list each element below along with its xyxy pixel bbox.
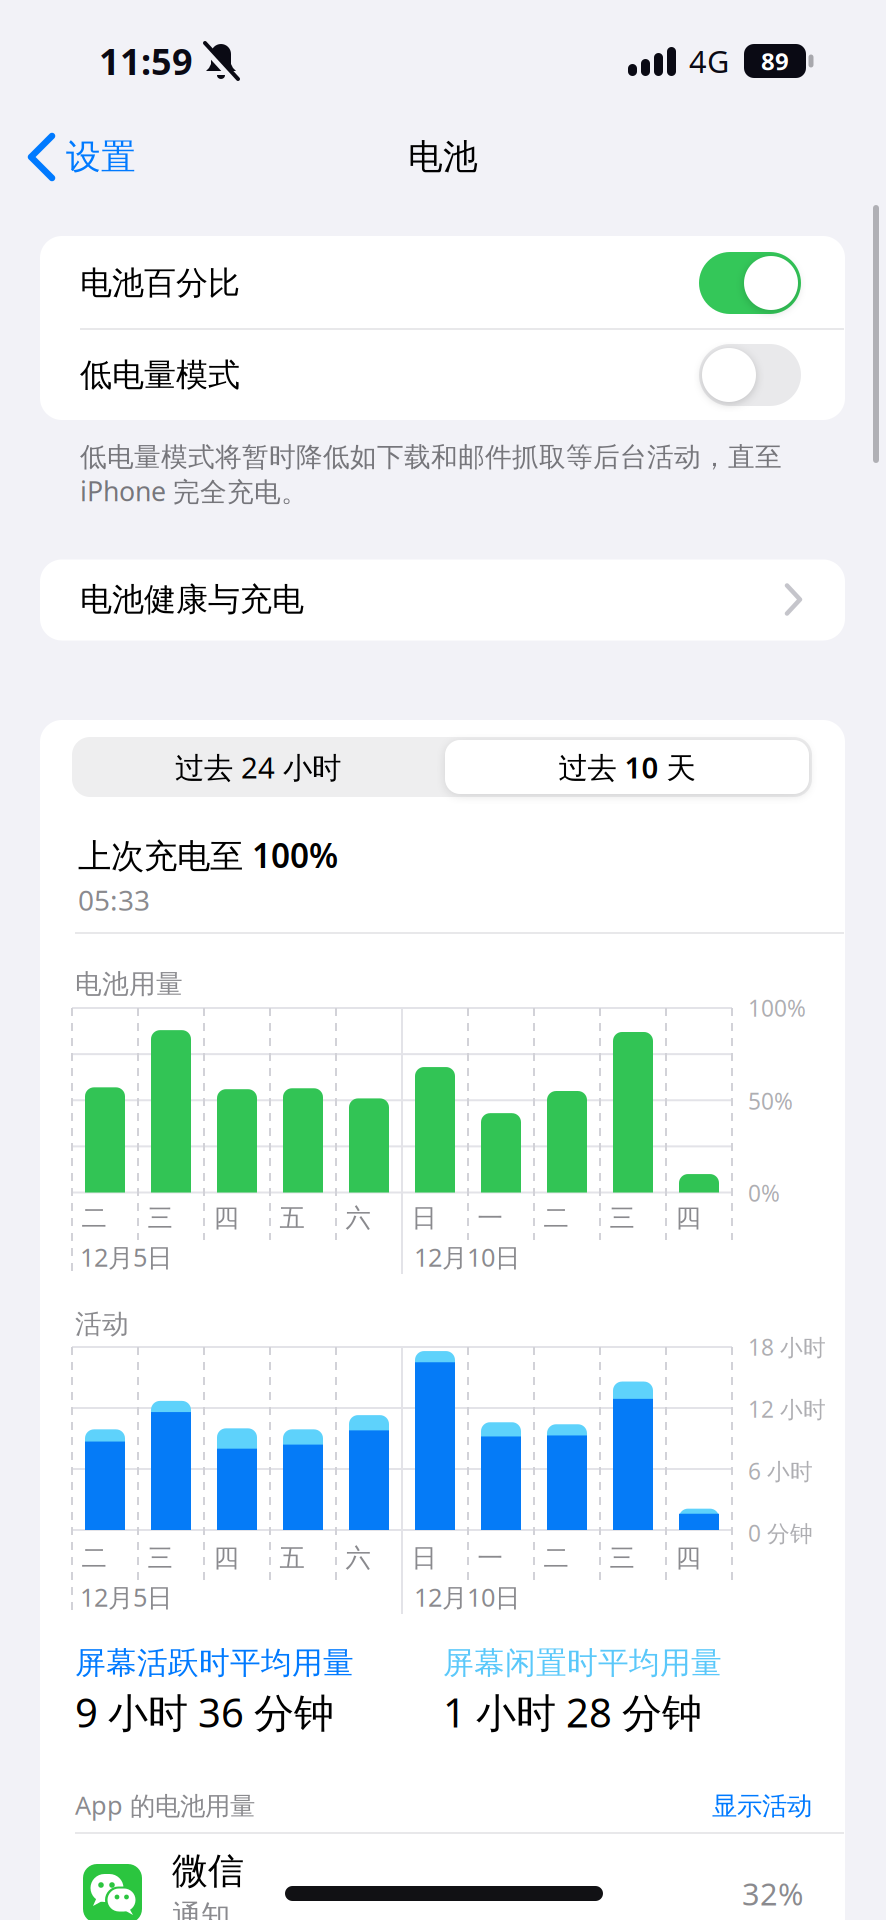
staticText: 0%	[748, 1178, 780, 1208]
staticText: 五	[279, 1202, 304, 1233]
staticText: 五	[279, 1542, 304, 1573]
staticText: 低电量模式	[80, 355, 240, 395]
staticText: 日	[411, 1542, 436, 1573]
staticText: 二	[81, 1202, 106, 1233]
staticText: 三	[147, 1202, 172, 1233]
staticText: 18 小时	[748, 1332, 826, 1362]
staticText: 0 分钟	[748, 1518, 813, 1548]
staticText: 1 小时 28 分钟	[443, 1685, 702, 1738]
staticText: 12月10日	[414, 1580, 520, 1614]
button[interactable]	[699, 344, 801, 406]
staticText: 4G	[689, 41, 729, 81]
staticText: iPhone 完全充电。	[80, 473, 308, 509]
staticText: 设置	[66, 136, 136, 178]
button[interactable]: 电池健康与充电	[40, 559, 845, 640]
staticText: 12月5日	[80, 1580, 172, 1614]
button[interactable]: 过去 24 小时	[75, 737, 441, 797]
staticText: 12 小时	[748, 1394, 826, 1424]
staticText: 微信	[172, 1849, 244, 1893]
staticText: 一	[477, 1542, 502, 1573]
staticText: 三	[609, 1542, 634, 1573]
staticText: 12月10日	[414, 1240, 520, 1274]
staticText: 电池	[408, 136, 478, 178]
staticText: 50%	[748, 1086, 793, 1116]
staticText: 过去 10 天	[558, 747, 695, 786]
staticText: 05:33	[78, 881, 150, 919]
staticText: 三	[147, 1542, 172, 1573]
staticText: 电池百分比	[80, 263, 240, 303]
staticText: 六	[345, 1542, 370, 1573]
staticText: 100%	[748, 993, 806, 1023]
staticText: 89	[761, 45, 789, 77]
staticText: App 的电池用量	[75, 1788, 255, 1822]
staticText: 六	[345, 1202, 370, 1233]
staticText: 电池用量	[75, 968, 183, 1000]
staticText: 11:59	[99, 37, 193, 85]
button[interactable]: 微信	[40, 1840, 846, 1920]
staticText: 6 小时	[748, 1456, 813, 1486]
staticText: 电池健康与充电	[80, 580, 304, 619]
button[interactable]	[699, 252, 801, 314]
staticText: 四	[213, 1542, 238, 1573]
staticText: 12月5日	[80, 1240, 172, 1274]
staticText: 二	[543, 1202, 568, 1233]
staticText: 显示活动	[712, 1790, 812, 1821]
staticText: 屏幕闲置时平均用量	[443, 1644, 722, 1682]
staticText: 屏幕活跃时平均用量	[75, 1644, 354, 1682]
staticText: 通知	[172, 1898, 230, 1920]
staticText: 低电量模式将暂时降低如下载和邮件抓取等后台活动，直至	[80, 441, 782, 473]
staticText: 过去 24 小时	[175, 747, 341, 786]
staticText: 日	[411, 1202, 436, 1233]
staticText: 上次充电至 100%	[78, 833, 338, 877]
staticText: 活动	[75, 1308, 129, 1340]
staticText: 四	[213, 1202, 238, 1233]
button[interactable]: 显示活动	[552, 1790, 812, 1821]
staticText: 二	[543, 1542, 568, 1573]
staticText: 32%	[742, 1873, 803, 1914]
staticText: 9 小时 36 分钟	[75, 1685, 334, 1738]
staticText: 三	[609, 1202, 634, 1233]
button[interactable]: 过去 10 天	[445, 740, 809, 794]
button[interactable]: 设置	[26, 131, 166, 183]
staticText: 四	[675, 1202, 700, 1233]
staticText: 一	[477, 1202, 502, 1233]
staticText: 四	[675, 1542, 700, 1573]
staticText: 二	[81, 1542, 106, 1573]
